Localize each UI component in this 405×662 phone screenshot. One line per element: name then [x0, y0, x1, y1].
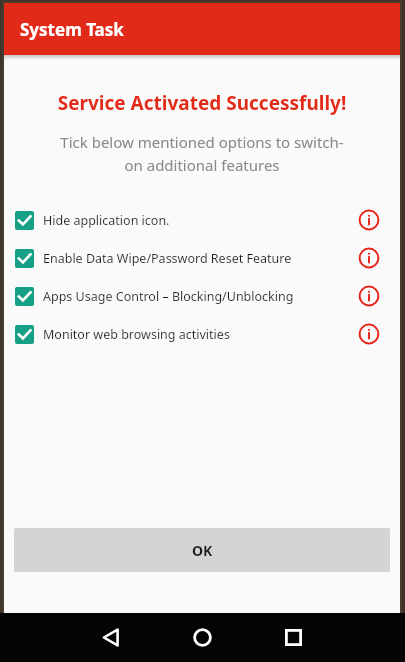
button[interactable]: More information	[357, 208, 381, 232]
other: Checked	[15, 287, 34, 306]
button[interactable]: Checked	[4, 277, 400, 315]
staticText: Service Activated Successfully!	[4, 90, 400, 116]
other: Checked	[15, 249, 34, 268]
button[interactable]: Checked	[4, 315, 400, 353]
staticText: Tick below mentioned options to switch- …	[22, 132, 382, 175]
staticText: Hide application icon.	[43, 212, 351, 229]
staticText: Enable Data Wipe/Password Reset Feature	[43, 250, 351, 267]
button[interactable]: Checked	[4, 201, 400, 239]
button[interactable]: Home	[157, 613, 248, 662]
button[interactable]: More information	[357, 246, 381, 270]
button[interactable]: OK	[14, 528, 390, 572]
button[interactable]: More information	[357, 284, 381, 308]
button[interactable]: More information	[357, 322, 381, 346]
other: Checked	[15, 325, 34, 344]
staticText: Monitor web browsing activities	[43, 326, 351, 343]
staticText: OK	[192, 541, 213, 560]
button[interactable]: Checked	[4, 239, 400, 277]
other: Checked	[15, 211, 34, 230]
staticText: System Task	[20, 18, 124, 41]
button[interactable]: Back	[66, 613, 157, 662]
button[interactable]: Recents	[248, 613, 339, 662]
staticText: Apps Usage Control – Blocking/Unblocking	[43, 288, 351, 305]
